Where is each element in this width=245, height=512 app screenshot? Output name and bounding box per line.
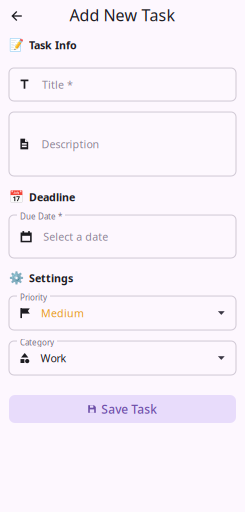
staticText: Task Info [29,38,77,52]
staticText: 📅 [9,190,24,204]
button[interactable]: Save Task [9,395,236,423]
staticText: Work [40,351,66,365]
staticText: Settings [29,271,73,285]
staticText: 📝 [9,38,24,52]
staticText: Description [42,137,100,151]
staticText: Save Task [101,401,157,417]
staticText: Category [20,337,54,348]
button[interactable]: Work [9,341,236,375]
button[interactable]: Select a date [9,215,236,258]
staticText: ⚙️ [9,271,24,285]
staticText: Add New Task [69,4,175,26]
button[interactable]: Title * [9,68,236,101]
staticText: Deadline [29,190,75,204]
staticText: Priority [20,292,47,303]
staticText: Title * [42,77,73,92]
button[interactable]: Back [3,1,31,29]
button[interactable]: Description [9,112,236,176]
button[interactable]: Medium [9,296,236,330]
staticText: Due Date * [20,211,62,222]
staticText: Select a date [43,229,108,244]
staticText: Medium [41,306,84,320]
